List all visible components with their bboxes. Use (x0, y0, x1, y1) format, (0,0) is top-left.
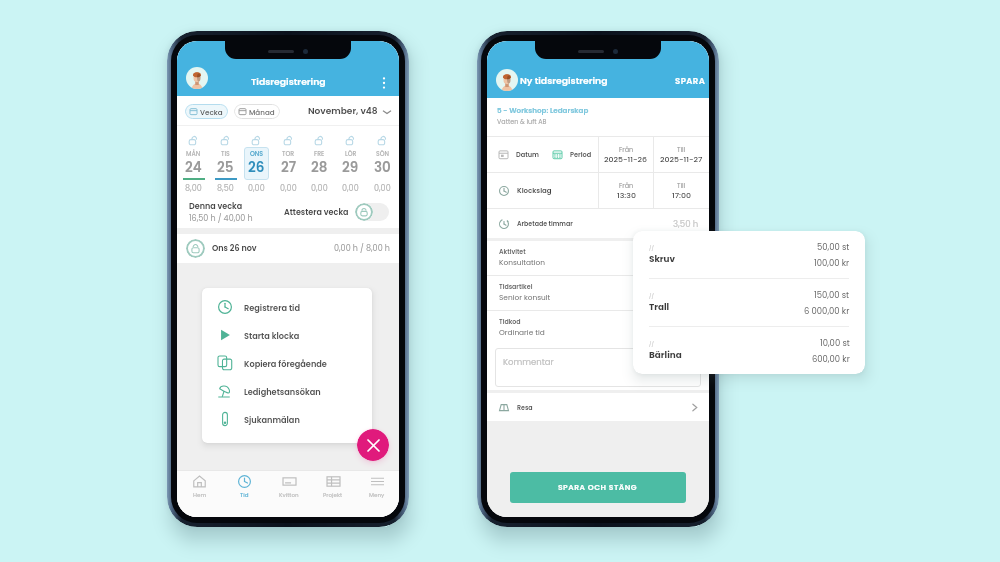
staticText: 25 (217, 158, 234, 177)
staticText: Aktivitet (499, 247, 526, 256)
button[interactable]: Datum (487, 137, 709, 172)
staticText: 5 - Workshop: Ledarskap (497, 105, 589, 115)
staticText: Bärlina (649, 349, 682, 361)
button[interactable]: LÖR (336, 126, 365, 196)
staticText: 150,00 st (814, 289, 850, 301)
staticText: ONS (250, 149, 264, 158)
button[interactable]: Kommentar (495, 348, 701, 387)
button[interactable]: Registrera tid (218, 293, 372, 321)
staticText: Till (677, 181, 686, 190)
button[interactable]: TIS (211, 126, 240, 196)
staticText: 0,00 (342, 183, 359, 194)
staticText: Månad (249, 107, 275, 117)
staticText: Hem (193, 491, 207, 499)
staticText: 3,50 h (673, 218, 699, 230)
button[interactable]: MÅN (179, 126, 208, 196)
staticText: 2025-11-27 (660, 154, 703, 165)
staticText: Från (619, 145, 634, 154)
staticText: TOR (282, 149, 295, 158)
button[interactable]: // (633, 279, 865, 326)
button[interactable]: Starta klocka (218, 321, 372, 349)
staticText: 16,50 h / 40,00 h (189, 213, 253, 224)
staticText: Tidkod (499, 317, 521, 326)
staticText: Klockslag (517, 186, 552, 196)
staticText: Från (619, 181, 634, 190)
button[interactable]: Profile (186, 67, 208, 89)
staticText: November, v48 (308, 105, 378, 118)
button[interactable]: Meny (355, 471, 399, 517)
staticText: Kopiera föregående (244, 358, 327, 369)
staticText: // (649, 293, 654, 300)
staticText: 8,50 (217, 183, 234, 194)
button[interactable]: Aktivitet (487, 241, 709, 275)
staticText: 50,00 st (817, 241, 850, 253)
staticText: Skruv (649, 253, 676, 265)
button[interactable]: Projekt (311, 471, 355, 517)
staticText: 0,00 (311, 183, 328, 194)
button[interactable]: FRE (305, 126, 334, 196)
staticText: 28 (311, 158, 328, 177)
staticText: TIS (221, 149, 230, 158)
button[interactable]: Hem (177, 471, 222, 517)
staticText: Tidsartikel (499, 282, 533, 291)
button[interactable]: Profile (496, 69, 518, 91)
staticText: 17:00 (672, 190, 692, 201)
staticText: // (649, 245, 654, 252)
button[interactable]: Ledighetsansökan (218, 377, 372, 405)
staticText: SÖN (376, 149, 390, 158)
staticText: Starta klocka (244, 330, 300, 341)
button[interactable]: Klockslag (487, 173, 709, 208)
button[interactable]: Vecka (185, 104, 228, 119)
button[interactable]: Tid (222, 471, 267, 517)
staticText: Tidsregistrering (251, 75, 326, 88)
staticText: Ordinarie tid (499, 327, 545, 337)
button[interactable]: Månad (234, 104, 280, 119)
staticText: Ny tidsregistrering (520, 74, 608, 87)
staticText: Trall (649, 301, 670, 313)
button[interactable]: Kvitton (267, 471, 311, 517)
staticText: Vatten & luft AB (497, 117, 547, 126)
staticText: Meny (369, 491, 385, 499)
button[interactable]: SPARA (675, 75, 706, 87)
button[interactable]: SÖN (368, 126, 397, 196)
button[interactable]: ONS (242, 126, 271, 196)
button[interactable]: // (633, 231, 865, 278)
staticText: // (649, 341, 654, 348)
staticText: Registrera tid (244, 302, 300, 313)
button[interactable]: Attestera vecka (355, 203, 389, 221)
staticText: 6 000,00 kr (804, 305, 850, 317)
staticText: 600,00 kr (812, 353, 850, 365)
staticText: Tid (240, 491, 249, 499)
staticText: 13:30 (617, 190, 636, 201)
staticText: 0,00 (248, 183, 265, 194)
staticText: Ledighetsansökan (244, 386, 321, 397)
staticText: Senior konsult (499, 292, 551, 302)
staticText: 8,00 (185, 183, 202, 194)
staticText: Vecka (200, 107, 223, 117)
staticText: Sjukanmälan (244, 414, 300, 425)
staticText: 24 (185, 158, 202, 177)
button[interactable]: Resa (499, 393, 699, 421)
staticText: FRE (314, 149, 325, 158)
button[interactable]: Close menu (357, 429, 389, 461)
staticText: Resa (517, 403, 533, 412)
staticText: 0,00 (280, 183, 297, 194)
button[interactable]: Ons 26 nov (186, 234, 390, 263)
button[interactable]: Sjukanmälan (218, 405, 372, 433)
staticText: MÅN (186, 149, 201, 158)
staticText: 26 (248, 158, 265, 177)
button[interactable]: Kopiera föregående (218, 349, 372, 377)
button[interactable]: Tidsartikel (487, 276, 709, 310)
staticText: Till (677, 145, 686, 154)
staticText: Kvitton (279, 491, 299, 499)
staticText: Kommentar (503, 356, 554, 368)
staticText: Denna vecka (189, 201, 243, 212)
staticText: Attestera vecka (284, 207, 349, 218)
button[interactable]: November, v48 (308, 105, 391, 118)
button[interactable]: Tidkod (487, 311, 709, 345)
button[interactable]: SPARA OCH STÄNG (510, 472, 686, 503)
button[interactable]: // (633, 327, 865, 374)
button[interactable]: TOR (274, 126, 303, 196)
staticText: 27 (281, 158, 297, 177)
button[interactable]: More options (375, 74, 393, 92)
